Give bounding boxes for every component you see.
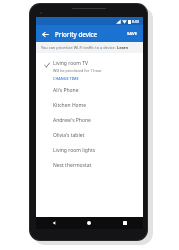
staticText: SAVE [127, 31, 138, 37]
button[interactable]: SAVE [124, 29, 141, 39]
button[interactable]: Recent apps [107, 217, 143, 229]
button[interactable]: Learn more [117, 45, 139, 50]
button[interactable]: Home [71, 217, 107, 229]
staticText: 8:00 [132, 19, 139, 24]
staticText: Olivia's tablet [53, 132, 85, 139]
staticText: Ali's Phone [53, 87, 79, 94]
staticText: Priority device [55, 30, 98, 38]
button[interactable]: Andrew's Phone [36, 113, 143, 128]
button[interactable]: Ali's Phone [36, 83, 143, 98]
staticText: Nest thermostat [53, 162, 92, 169]
staticText: Living room lights [53, 147, 96, 154]
staticText: You can prioritize Wi-Fi traffic to a de… [41, 45, 117, 50]
button[interactable]: Nest thermostat [36, 158, 143, 173]
staticText: Will be prioritized for 1 hour [53, 68, 102, 73]
button[interactable]: Kitchen Home [36, 98, 143, 113]
button[interactable]: Back [36, 217, 71, 229]
staticText: Learn more [117, 45, 139, 50]
button[interactable]: CHANGE TIME [53, 76, 79, 81]
staticText: Living room TV [53, 60, 88, 67]
staticText: Andrew's Phone [53, 117, 91, 124]
staticText: Kitchen Home [53, 102, 87, 109]
staticText: CHANGE TIME [53, 76, 79, 81]
button[interactable]: Olivia's tablet [36, 128, 143, 143]
button[interactable]: Living room lights [36, 143, 143, 158]
button[interactable]: Living room TV [36, 57, 143, 83]
button[interactable]: Back [39, 28, 51, 40]
